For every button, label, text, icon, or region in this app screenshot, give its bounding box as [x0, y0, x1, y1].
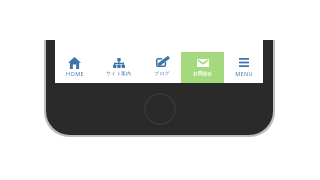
staticText: MENU — [235, 70, 253, 77]
button[interactable]: Site map — [94, 52, 143, 83]
staticText: お問合せ — [193, 70, 212, 76]
button[interactable]: Menu — [224, 52, 263, 83]
staticText: ブログ — [154, 70, 170, 76]
button[interactable]: Home — [55, 52, 94, 83]
button[interactable]: Contact — [181, 52, 224, 83]
button[interactable]: Blog — [143, 52, 181, 83]
staticText: HOME — [66, 70, 84, 77]
staticText: サイト案内 — [106, 70, 131, 76]
